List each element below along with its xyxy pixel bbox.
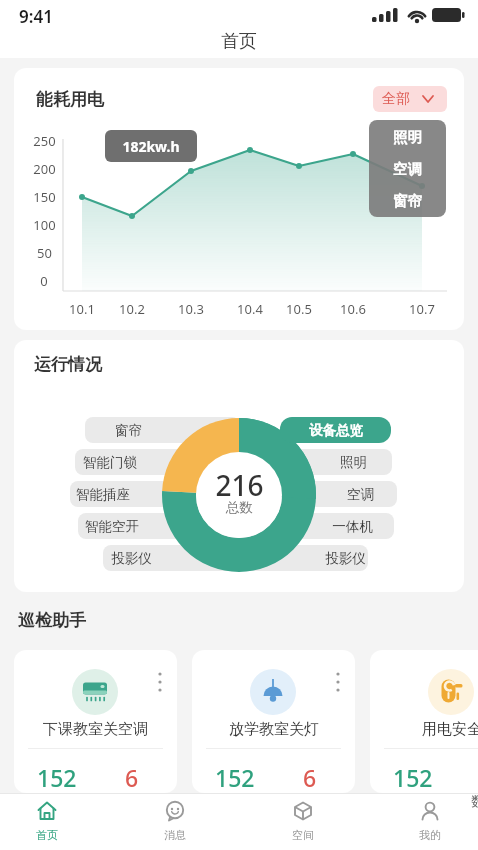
staticText: 窗帘 <box>115 422 142 439</box>
staticText: 照明 <box>393 128 422 146</box>
staticText: 216 <box>215 466 264 496</box>
staticText: 152 <box>393 762 433 792</box>
staticText: 152 <box>215 762 255 792</box>
staticText: 窗帘 <box>393 192 422 210</box>
button[interactable] <box>70 481 397 507</box>
staticText: 数 <box>471 793 478 811</box>
staticText: 10.5 <box>286 300 312 318</box>
button[interactable] <box>103 545 368 571</box>
staticText: 设备总览 <box>309 422 363 439</box>
button[interactable]: 我的 <box>385 793 475 850</box>
button[interactable]: 放学教室关灯 <box>192 650 355 793</box>
button[interactable] <box>280 417 391 443</box>
staticText: 9:41 <box>19 5 53 28</box>
staticText: 152 <box>37 762 77 792</box>
staticText: 200 <box>33 160 56 178</box>
button[interactable]: 空间 <box>258 793 348 850</box>
staticText: 放学教室关灯 <box>229 720 319 739</box>
staticText: 10.3 <box>178 300 204 318</box>
button[interactable]: 用电安全 <box>370 650 478 793</box>
staticText: 6 <box>125 762 139 792</box>
staticText: 首页 <box>36 828 58 842</box>
staticText: 10.1 <box>69 300 95 318</box>
staticText: 10.4 <box>237 300 263 318</box>
staticText: 250 <box>33 132 56 150</box>
staticText: 空调 <box>393 160 422 178</box>
staticText: 182kw.h <box>122 137 180 156</box>
button[interactable] <box>85 417 240 443</box>
staticText: 150 <box>33 188 56 206</box>
staticText: 我的 <box>419 828 441 842</box>
staticText: 用电安全 <box>422 720 478 739</box>
button[interactable]: 下课教室关空调 <box>14 650 177 793</box>
button[interactable]: 首页 <box>2 793 92 850</box>
staticText: 智能门锁 <box>83 454 137 471</box>
staticText: 下课教室关空调 <box>43 720 148 739</box>
staticText: 首页 <box>221 30 257 53</box>
staticText: 10.7 <box>409 300 435 318</box>
staticText: 照明 <box>340 454 367 471</box>
staticText: 运行情况 <box>34 354 102 375</box>
staticText: 6 <box>303 762 317 792</box>
staticText: 10.2 <box>119 300 145 318</box>
staticText: 智能插座 <box>76 486 130 503</box>
staticText: 50 <box>37 244 52 262</box>
staticText: 全部 <box>382 90 410 108</box>
staticText: 巡检助手 <box>18 610 86 631</box>
button[interactable] <box>373 86 447 112</box>
button[interactable]: 消息 <box>130 793 220 850</box>
staticText: 投影仪 <box>325 550 366 567</box>
staticText: 总数 <box>226 499 253 516</box>
staticText: 100 <box>33 216 56 234</box>
button[interactable]: 空调 <box>369 154 446 184</box>
staticText: 空间 <box>292 828 314 842</box>
staticText: 空调 <box>347 486 374 503</box>
staticText: 能耗用电 <box>36 89 104 110</box>
button[interactable]: 照明 <box>369 122 446 152</box>
button[interactable] <box>75 449 392 475</box>
button[interactable] <box>78 513 394 539</box>
button[interactable]: 窗帘 <box>369 186 446 216</box>
staticText: 投影仪 <box>111 550 152 567</box>
staticText: 智能空开 <box>85 518 139 535</box>
staticText: 一体机 <box>332 518 373 535</box>
staticText: 消息 <box>164 828 186 842</box>
staticText: 0 <box>40 272 48 290</box>
staticText: 10.6 <box>340 300 366 318</box>
